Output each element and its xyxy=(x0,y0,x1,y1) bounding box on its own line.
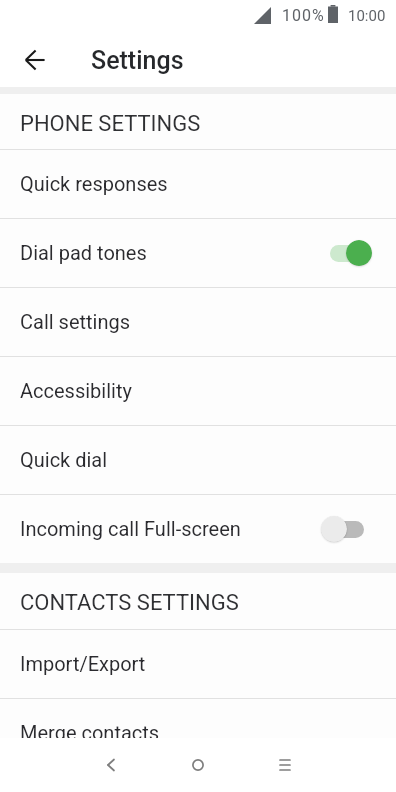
staticText: Call settings xyxy=(20,310,131,333)
button[interactable]: Call settings xyxy=(0,288,396,356)
staticText: Quick responses xyxy=(20,172,168,195)
staticText: Dial pad tones xyxy=(20,241,147,264)
button[interactable]: Home xyxy=(154,738,241,792)
staticText: Incoming call Full-screen xyxy=(20,517,241,540)
staticText: 10:00 xyxy=(348,7,386,25)
staticText: Accessibility xyxy=(20,379,132,402)
button[interactable]: Quick dial xyxy=(0,426,396,494)
button[interactable]: Incoming call Full-screen xyxy=(0,495,396,563)
button[interactable]: Accessibility xyxy=(0,357,396,425)
button[interactable]: Recent apps xyxy=(241,738,328,792)
button[interactable]: Import/Export xyxy=(0,630,396,698)
staticText: Import/Export xyxy=(20,652,146,675)
button[interactable]: Quick responses xyxy=(0,150,396,218)
staticText: CONTACTS SETTINGS xyxy=(20,590,239,616)
staticText: Merge contacts xyxy=(20,721,160,738)
staticText: PHONE SETTINGS xyxy=(20,111,201,137)
staticText: Settings xyxy=(91,46,184,75)
button[interactable]: Merge contacts xyxy=(0,699,396,738)
staticText: Quick dial xyxy=(20,448,108,471)
staticText: 100% xyxy=(282,6,325,25)
button[interactable]: Back xyxy=(67,738,154,792)
button[interactable]: Navigate up xyxy=(0,34,70,87)
button[interactable]: Dial pad tones xyxy=(0,219,396,287)
button[interactable]: Off xyxy=(316,514,364,544)
button[interactable]: On xyxy=(324,238,372,268)
